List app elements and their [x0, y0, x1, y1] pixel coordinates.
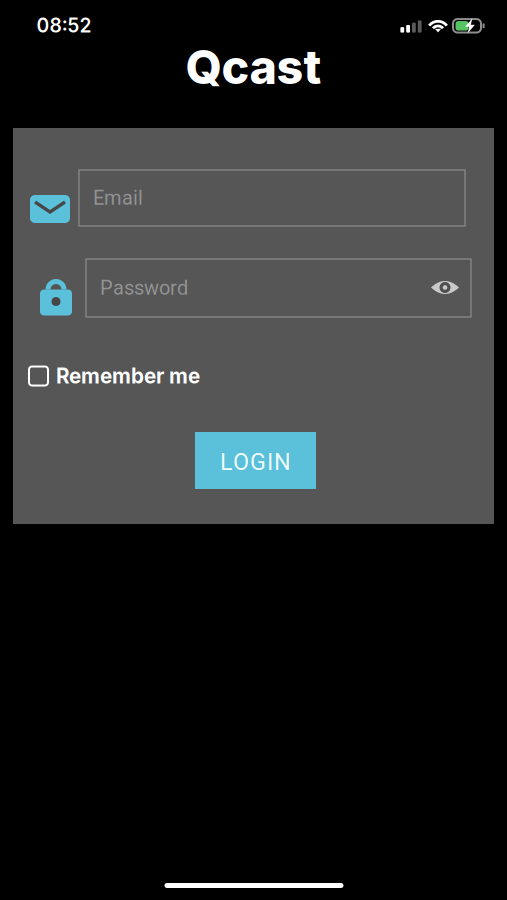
button[interactable]: Show password [425, 271, 465, 303]
button[interactable]: Password [86, 259, 471, 317]
staticText: 08:52 [36, 14, 91, 37]
button[interactable]: LOGIN [195, 432, 316, 489]
button[interactable]: Remember me [29, 363, 269, 389]
staticText: Password [100, 276, 188, 300]
staticText: LOGIN [220, 448, 291, 476]
staticText: Remember me [56, 363, 200, 388]
button[interactable]: Email [79, 170, 465, 226]
staticText: Qcast [185, 39, 321, 95]
staticText: Email [93, 186, 143, 210]
